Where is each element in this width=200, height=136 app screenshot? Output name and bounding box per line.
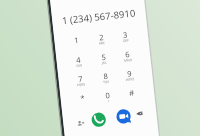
button[interactable]: [119, 64, 141, 82]
button[interactable]: [91, 28, 113, 46]
button[interactable]: Call: [92, 113, 106, 127]
button[interactable]: [121, 84, 143, 102]
button[interactable]: [95, 67, 117, 85]
button[interactable]: [117, 45, 139, 63]
button[interactable]: [66, 31, 88, 49]
button[interactable]: [97, 86, 119, 104]
button[interactable]: Add contact: [75, 118, 85, 128]
button[interactable]: Backspace: [135, 108, 146, 119]
button[interactable]: [70, 70, 92, 88]
button[interactable]: [56, 10, 142, 24]
button[interactable]: [68, 51, 90, 69]
button[interactable]: [72, 89, 94, 107]
button[interactable]: [93, 48, 115, 66]
button[interactable]: [114, 26, 136, 44]
button[interactable]: Video call: [116, 109, 130, 123]
